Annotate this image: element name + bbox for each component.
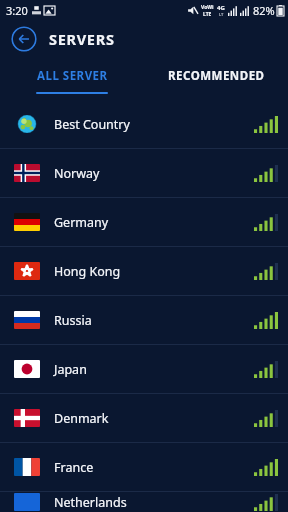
staticText: Best Country — [54, 116, 130, 133]
staticText: 4G — [217, 4, 225, 12]
button[interactable]: Norway — [0, 149, 288, 197]
staticText: Norway — [54, 165, 100, 182]
button[interactable]: Netherlands — [0, 492, 288, 512]
button[interactable]: France — [0, 443, 288, 491]
staticText: ALL SERVER — [37, 68, 108, 84]
staticText: Germany — [54, 214, 109, 231]
staticText: Japan — [54, 361, 87, 378]
staticText: VoWi — [201, 4, 214, 11]
button[interactable]: Japan — [0, 345, 288, 393]
button[interactable]: Hong Kong — [0, 247, 288, 295]
button[interactable]: Germany — [0, 198, 288, 246]
staticText: LT — [219, 12, 224, 17]
staticText: 3:20 — [6, 3, 28, 18]
staticText: France — [54, 459, 94, 476]
staticText: Hong Kong — [54, 263, 121, 280]
staticText: Netherlands — [54, 494, 127, 511]
button[interactable]: ALL SERVER — [0, 58, 144, 100]
button[interactable]: Back — [11, 26, 37, 52]
staticText: Russia — [54, 312, 92, 329]
staticText: RECOMMENDED — [168, 68, 265, 84]
staticText: 82% — [253, 3, 275, 18]
button[interactable]: Denmark — [0, 394, 288, 442]
button[interactable]: Russia — [0, 296, 288, 344]
staticText: SERVERS — [49, 29, 115, 49]
staticText: Denmark — [54, 410, 109, 427]
button[interactable]: Best Country — [0, 100, 288, 148]
button[interactable]: RECOMMENDED — [144, 58, 288, 100]
staticText: LTE — [203, 11, 212, 18]
